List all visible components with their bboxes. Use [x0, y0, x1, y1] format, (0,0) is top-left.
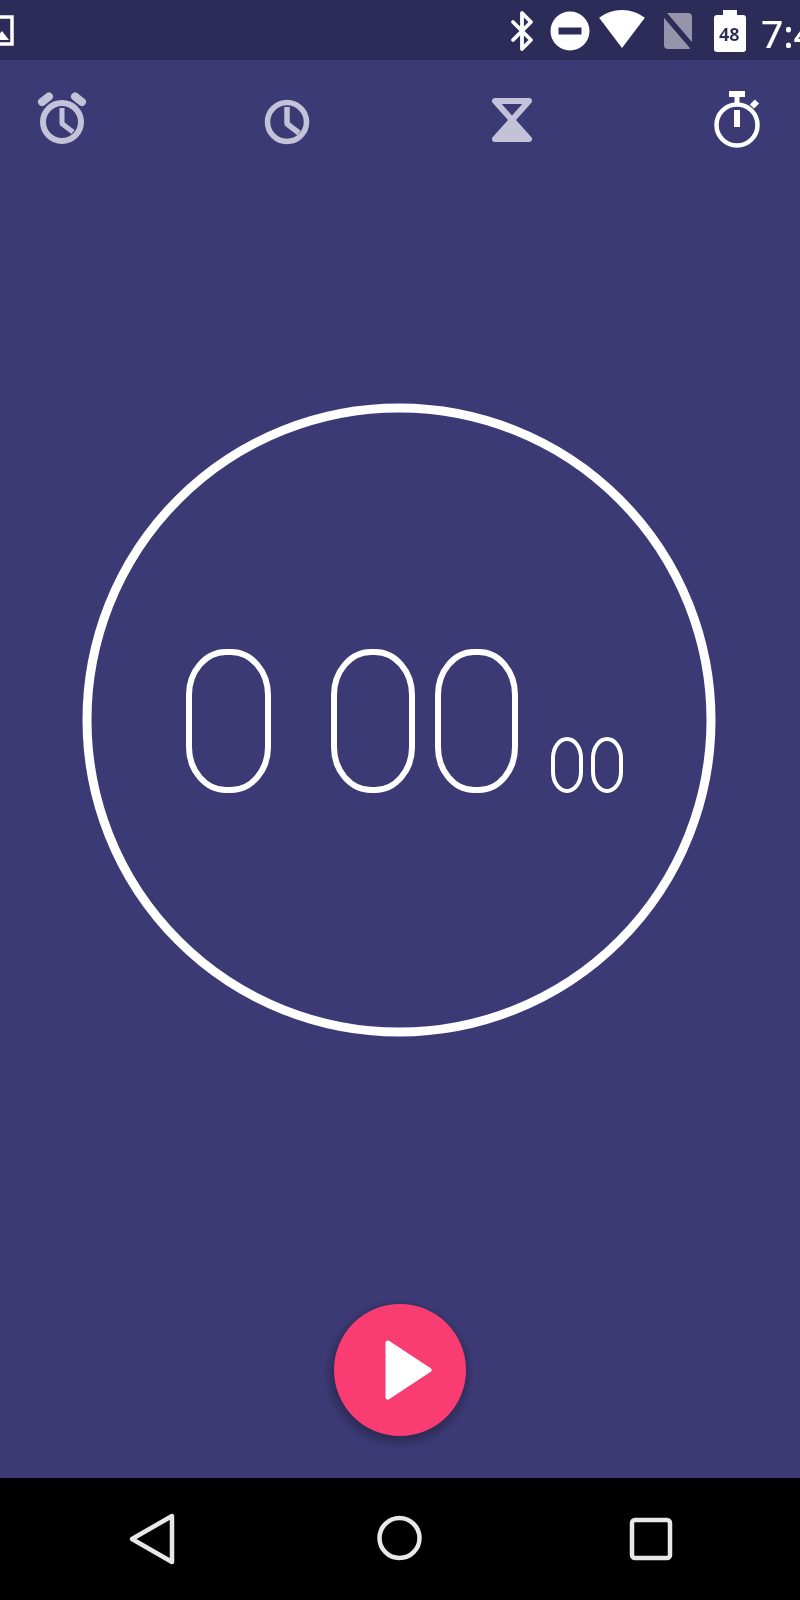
button[interactable] — [266, 1478, 533, 1600]
button[interactable] — [17, 60, 107, 180]
staticText: 48 — [719, 22, 740, 47]
button[interactable] — [467, 60, 557, 180]
button[interactable] — [0, 1478, 266, 1600]
staticText: 7:45 — [761, 6, 800, 59]
button[interactable] — [242, 60, 332, 180]
button[interactable] — [692, 60, 782, 180]
button[interactable] — [334, 1304, 466, 1436]
button[interactable] — [533, 1478, 800, 1600]
